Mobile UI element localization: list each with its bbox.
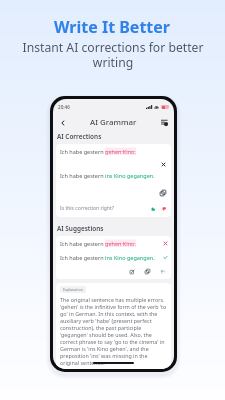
button[interactable]: Back [57, 117, 68, 128]
button[interactable]: Thumbs down [160, 205, 167, 212]
staticText: The original sentence has multiple error… [60, 296, 167, 366]
staticText: Ich habe gestern ins Kino gegangen. [60, 254, 155, 261]
button[interactable]: Thumbs up [149, 205, 156, 212]
button[interactable]: Undo [159, 268, 166, 275]
staticText: Write It Better [54, 16, 171, 38]
button[interactable]: Dismiss [160, 161, 167, 168]
button[interactable]: Copy [144, 268, 151, 275]
staticText: AI Grammar [90, 117, 137, 128]
staticText: Is this correction right? [60, 205, 114, 212]
staticText: 20:46 [58, 104, 70, 110]
staticText: Ich habe gestern ins Kino gegangen. [60, 172, 155, 179]
staticText: Explanation [63, 287, 83, 292]
button[interactable]: Copy [159, 189, 167, 197]
staticText: AI Suggestions [57, 224, 104, 233]
button[interactable]: Edit [128, 268, 135, 275]
button[interactable]: History [159, 117, 170, 128]
staticText: AI Corrections [57, 132, 102, 141]
staticText: Instant AI corrections for better writin… [15, 39, 211, 71]
staticText: Ich habe gestern gehen Kino. [60, 148, 136, 155]
staticText: Ich habe gestern gehen Kino. [60, 240, 136, 247]
